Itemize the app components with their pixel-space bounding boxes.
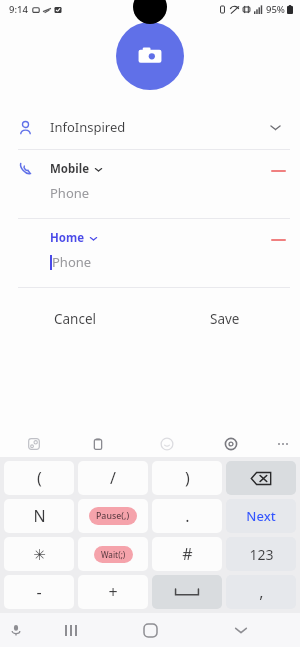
staticText: + [108, 581, 118, 603]
button[interactable]: Pause(,) [78, 499, 148, 533]
staticText: N [33, 505, 46, 527]
button[interactable]: Home [0, 219, 300, 287]
button[interactable]: Mobile [0, 150, 300, 218]
staticText: Wait(;) [101, 549, 126, 560]
button[interactable]: Remove Home phone [270, 233, 286, 247]
staticText: ✳ [33, 546, 46, 563]
button[interactable]: Save [150, 306, 300, 332]
staticText: Phone [52, 253, 92, 271]
button[interactable]: + [78, 575, 148, 609]
button[interactable]: . [152, 499, 222, 533]
button[interactable]: N [4, 499, 74, 533]
button[interactable]: ( [4, 461, 74, 495]
button[interactable]: Hide keyboard [228, 617, 254, 643]
staticText: ( [37, 467, 42, 489]
staticText: Save [210, 310, 240, 328]
button[interactable]: , [226, 575, 296, 609]
staticText: Home [50, 230, 85, 246]
button[interactable]: Keyboard settings [219, 431, 243, 457]
staticText: 95% [266, 3, 285, 16]
button[interactable]: Stickers [22, 431, 46, 457]
staticText: Pause(,) [96, 510, 130, 522]
button[interactable]: 123 [226, 537, 296, 571]
staticText: ) [185, 467, 190, 489]
button[interactable]: Change contact photo [116, 22, 184, 90]
staticText: - [36, 581, 42, 603]
button[interactable]: Voice input [5, 619, 27, 641]
button[interactable]: Next [226, 499, 296, 533]
button[interactable]: Remove Mobile phone [270, 164, 286, 178]
button[interactable]: Home [137, 617, 163, 643]
button[interactable]: Backspace [226, 461, 296, 495]
staticText: InfoInspired [50, 118, 126, 136]
staticText: Next [246, 507, 276, 525]
staticText: Mobile [50, 161, 90, 177]
button[interactable]: Cancel [0, 306, 150, 332]
staticText: , [259, 581, 264, 603]
button[interactable]: ✳ [4, 537, 74, 571]
button[interactable]: More options [272, 431, 294, 457]
button[interactable]: # [152, 537, 222, 571]
button[interactable]: Emoji [155, 431, 179, 457]
button[interactable]: Recent apps [58, 617, 84, 643]
button[interactable]: ) [152, 461, 222, 495]
button[interactable]: Space [152, 575, 222, 609]
button[interactable]: - [4, 575, 74, 609]
staticText: 123 [249, 545, 274, 564]
staticText: Cancel [54, 310, 97, 328]
button[interactable]: / [78, 461, 148, 495]
button[interactable]: InfoInspired [0, 110, 300, 144]
staticText: # [182, 543, 193, 565]
button[interactable]: Clipboard [86, 431, 110, 457]
staticText: . [185, 505, 190, 527]
button[interactable]: Wait(;) [78, 537, 148, 571]
staticText: Phone [50, 184, 90, 202]
staticText: / [110, 467, 116, 489]
staticText: 9:14 [9, 3, 28, 16]
